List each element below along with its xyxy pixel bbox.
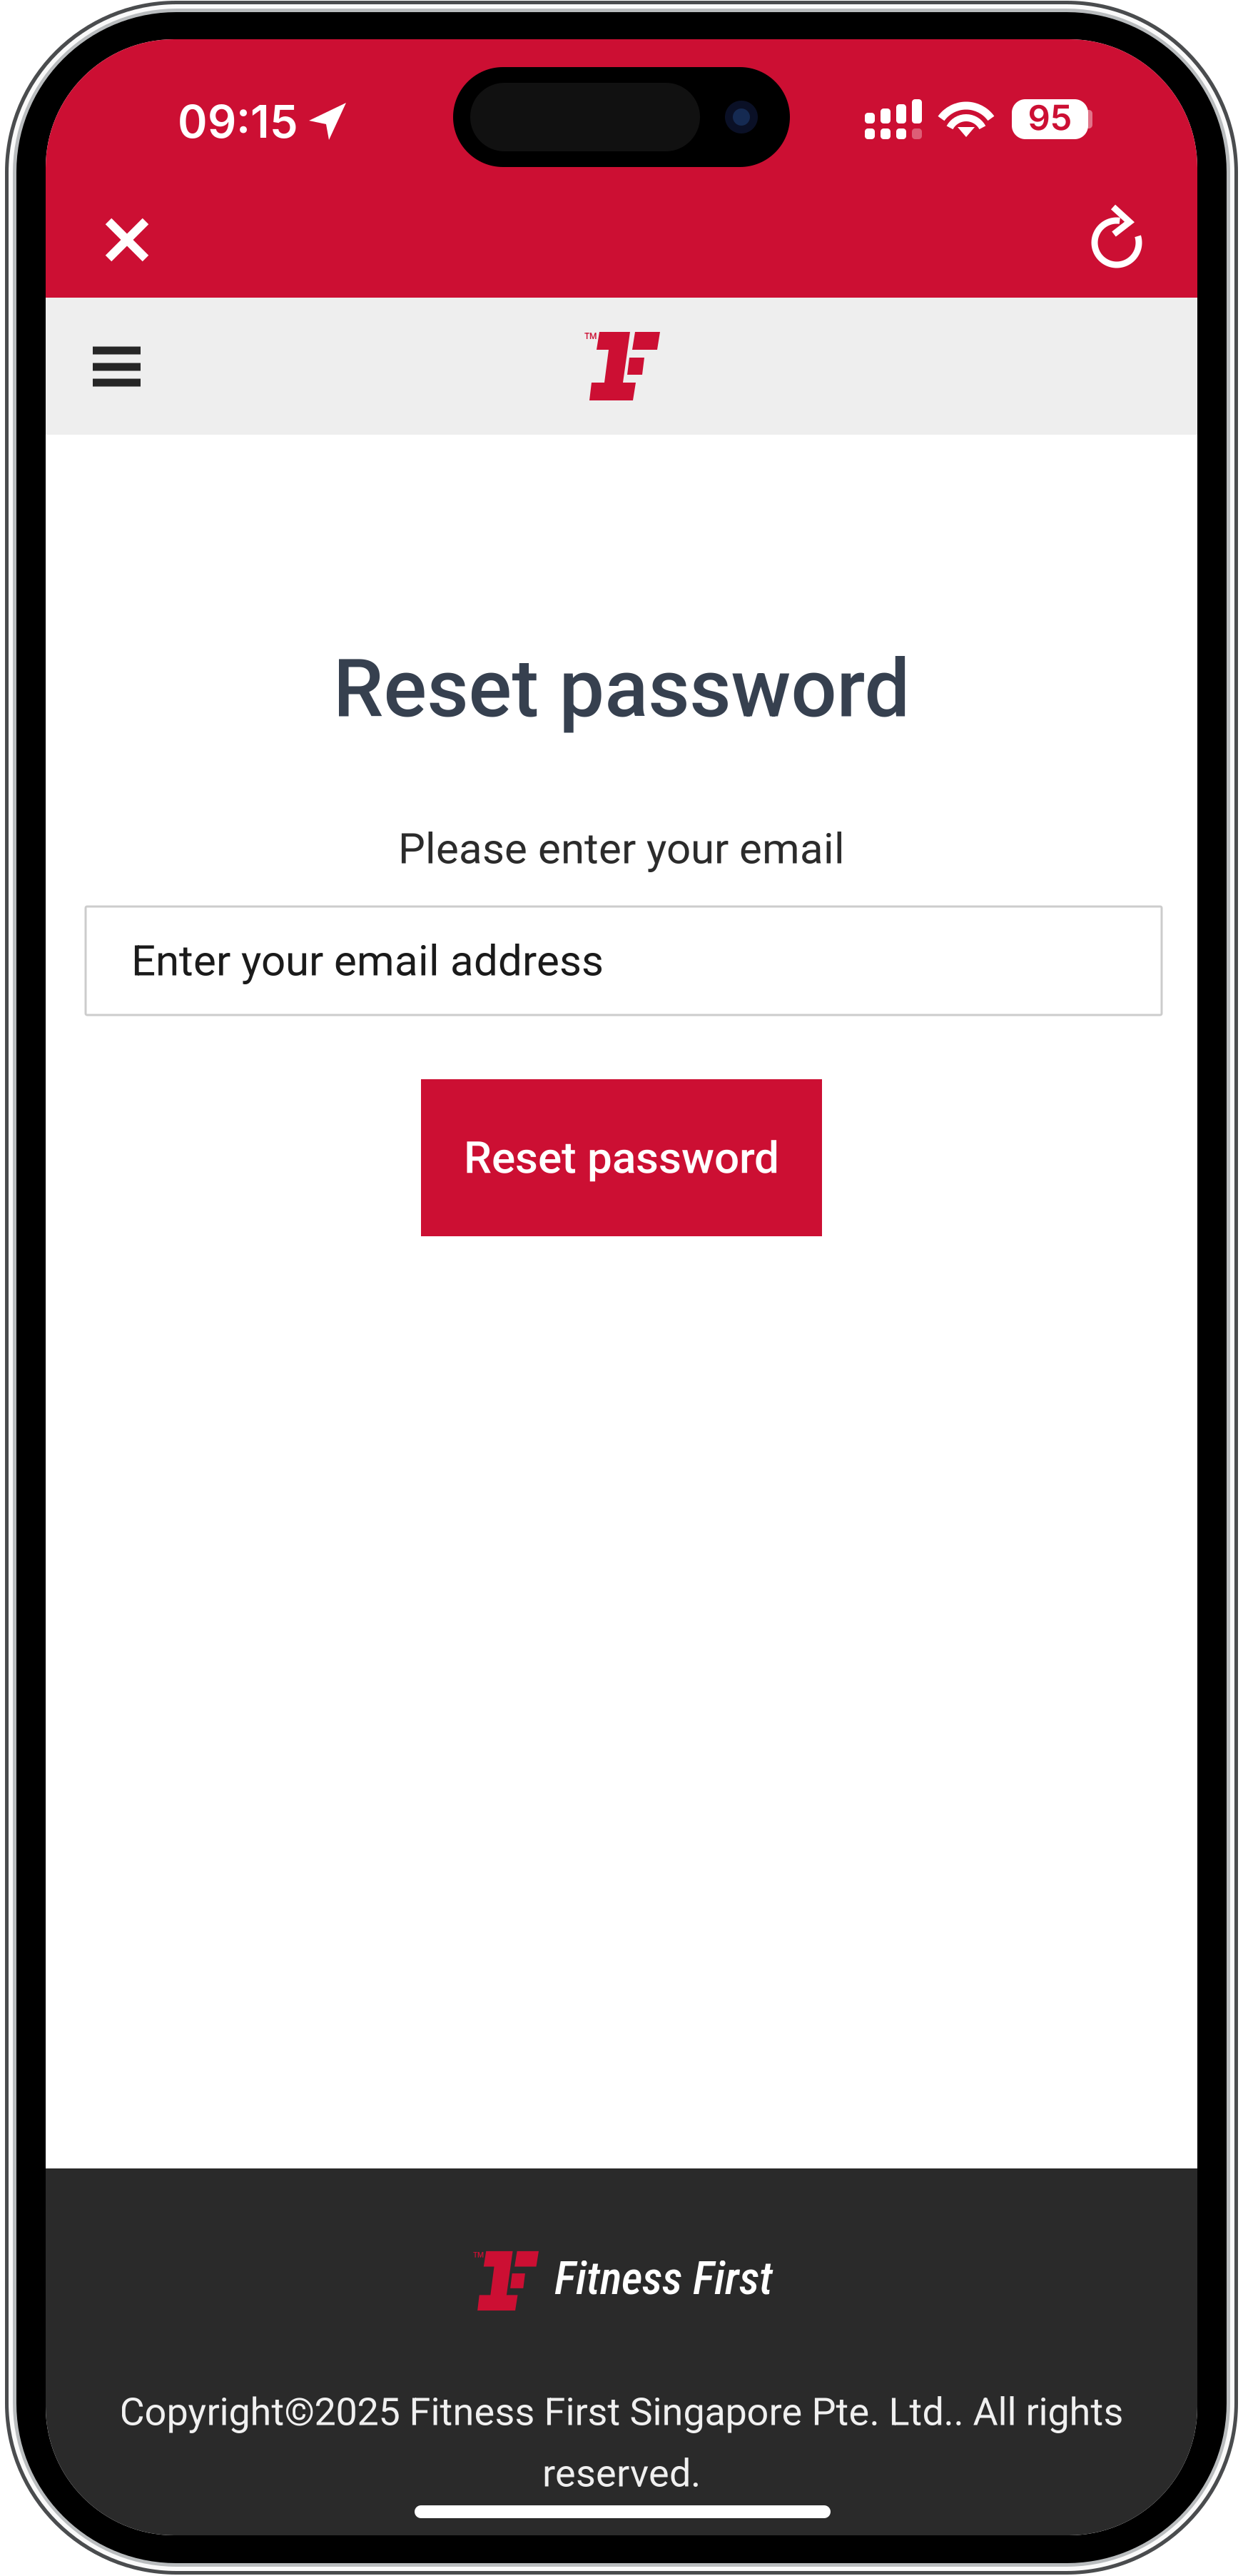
staticText: 09:15 [178, 94, 298, 149]
button[interactable]: Reset password [421, 1079, 822, 1236]
staticText: Copyright©2025 Fitness First Singapore P… [120, 2389, 1123, 2434]
staticText: Fitness First [554, 2252, 773, 2305]
staticText: Enter your email address [131, 936, 604, 986]
button[interactable]: Close [91, 204, 163, 276]
button[interactable]: Menu [88, 346, 145, 387]
staticText: Reset password [464, 1132, 779, 1184]
staticText: TM [473, 2251, 484, 2259]
staticText: Please enter your email [398, 824, 845, 874]
staticText: Reset password [333, 642, 910, 736]
staticText: reserved. [542, 2451, 701, 2496]
staticText: TM [584, 331, 597, 341]
staticText: 95 [1028, 97, 1072, 139]
button[interactable]: Reload [1085, 200, 1165, 280]
